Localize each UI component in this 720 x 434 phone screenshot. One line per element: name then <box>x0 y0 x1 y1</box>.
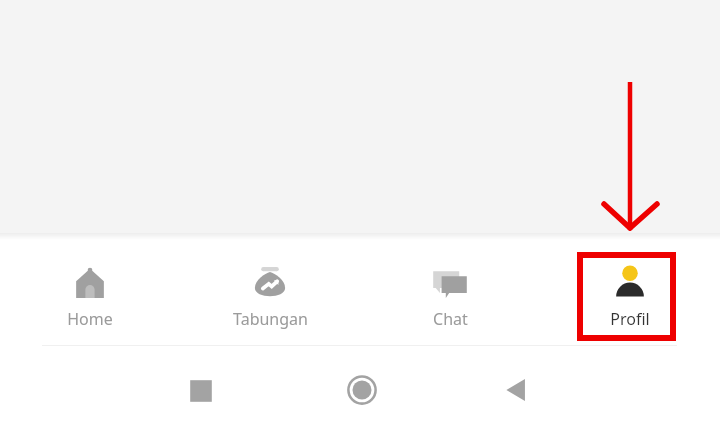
button[interactable]: Recent apps <box>186 376 216 406</box>
other: Tabungan <box>249 262 291 304</box>
button[interactable]: Home <box>0 240 180 330</box>
button[interactable]: Tabungan <box>180 240 360 330</box>
staticText: Home <box>67 308 113 330</box>
button[interactable]: Profil <box>540 240 720 330</box>
staticText: Tabungan <box>233 308 308 330</box>
staticText: Chat <box>433 308 468 330</box>
other: Chat <box>429 262 471 304</box>
other: Home <box>69 262 111 304</box>
staticText: Profil <box>610 308 650 330</box>
button[interactable]: Home <box>345 373 379 407</box>
button[interactable]: Chat <box>360 240 540 330</box>
button[interactable]: Back <box>500 374 532 406</box>
other: Profil <box>609 262 651 304</box>
